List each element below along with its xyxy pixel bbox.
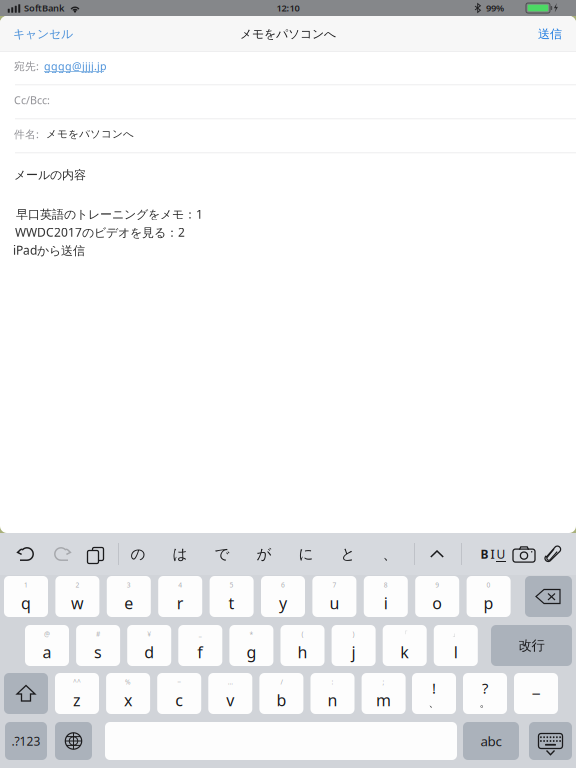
button[interactable]: Text formatting [463, 533, 507, 575]
button[interactable]: と [327, 533, 369, 575]
staticText: 、 [428, 696, 439, 709]
staticText: ( [301, 630, 303, 638]
staticText: に [298, 545, 313, 563]
button[interactable]: Switch keyboard language [55, 722, 92, 760]
staticText: 改行 [518, 637, 544, 654]
staticText: 。 [479, 696, 490, 709]
staticText: l [454, 641, 458, 663]
button[interactable]: 2 [55, 576, 99, 617]
staticText: e [124, 592, 133, 614]
button[interactable]: Paste [76, 533, 110, 575]
button[interactable]: に [285, 533, 327, 575]
button[interactable]: : [310, 673, 354, 714]
button[interactable]: 4 [158, 576, 202, 617]
staticText: ^^ [73, 678, 81, 686]
button[interactable]: 、 [369, 533, 411, 575]
staticText: .?123 [11, 733, 40, 749]
staticText: k [400, 641, 409, 663]
button[interactable]: 「 [383, 625, 427, 666]
staticText: d [144, 641, 154, 663]
staticText: 3 [127, 581, 131, 589]
button[interactable]: Insert photo [508, 533, 540, 575]
staticText: s [94, 641, 102, 663]
button[interactable]: abc [463, 722, 519, 760]
button[interactable]: 8 [364, 576, 408, 617]
button[interactable]: Delete [525, 576, 572, 617]
staticText: の [130, 545, 145, 563]
staticText: 早口英語のトレーニングをメモ：1 [16, 206, 203, 222]
staticText: i [384, 592, 388, 614]
button[interactable]: で [201, 533, 243, 575]
button[interactable]: ¥ [127, 625, 171, 666]
button[interactable]: ) [332, 625, 376, 666]
staticText: 宛先: [14, 59, 39, 73]
button[interactable]: 9 [415, 576, 459, 617]
button[interactable]: の [117, 533, 159, 575]
button[interactable]: Attach file [539, 533, 567, 575]
staticText: h [297, 641, 307, 663]
button[interactable]: 」 [434, 625, 478, 666]
button[interactable]: キャンセル [0, 16, 123, 52]
staticText: が [256, 545, 271, 563]
button[interactable]: / [259, 673, 303, 714]
staticText: 7 [332, 581, 336, 589]
button[interactable]: 5 [210, 576, 254, 617]
staticText: Cc/Bcc: [14, 93, 50, 107]
staticText: ) [353, 630, 355, 638]
staticText: ? [482, 678, 488, 698]
staticText: c [175, 689, 183, 711]
staticText: U [496, 546, 505, 562]
button[interactable]: _ [178, 625, 222, 666]
staticText: m [376, 689, 391, 711]
button[interactable]: # [76, 625, 120, 666]
button[interactable]: ( [280, 625, 324, 666]
button[interactable]: ~ [157, 673, 201, 714]
staticText: gggg@jjjj.jp [44, 59, 107, 73]
button[interactable]: @ [25, 625, 69, 666]
staticText: と [340, 545, 355, 563]
staticText: # [96, 630, 100, 638]
button[interactable]: Redo [44, 533, 78, 575]
button[interactable]: 6 [261, 576, 305, 617]
button[interactable]: 3 [107, 576, 151, 617]
staticText: y [279, 592, 287, 614]
button[interactable]: Undo [10, 533, 44, 575]
button[interactable]: ! [412, 673, 456, 714]
button[interactable]: Previous [420, 533, 454, 575]
staticText: ~ [177, 678, 181, 686]
staticText: I [490, 546, 494, 562]
button[interactable]: Shift [4, 673, 48, 714]
button[interactable]: % [106, 673, 150, 714]
staticText: r [177, 592, 184, 614]
staticText: 0 [487, 581, 491, 589]
staticText: % [125, 678, 131, 686]
button[interactable]: 送信 [490, 16, 576, 52]
staticText: 、 [382, 545, 397, 563]
staticText: 5 [230, 581, 234, 589]
staticText: o [432, 592, 442, 614]
button[interactable]: ? [463, 673, 507, 714]
button[interactable]: が [243, 533, 285, 575]
staticText: t [229, 592, 235, 614]
button[interactable]: ^^ [55, 673, 99, 714]
button[interactable]: は [159, 533, 201, 575]
button[interactable]: − [514, 673, 558, 714]
button[interactable]: ; [362, 673, 406, 714]
button[interactable]: * [229, 625, 273, 666]
staticText: 送信 [538, 27, 562, 41]
staticText: ; [383, 678, 385, 686]
button[interactable]: 0 [467, 576, 511, 617]
button[interactable]: 7 [312, 576, 356, 617]
staticText: g [246, 641, 256, 663]
staticText: n [327, 689, 337, 711]
staticText: * [249, 630, 253, 638]
staticText: ! [432, 678, 436, 698]
staticText: f [197, 641, 203, 663]
button[interactable]: .?123 [5, 723, 47, 759]
button[interactable]: Hide keyboard [529, 722, 572, 760]
button[interactable]: … [208, 673, 252, 714]
button[interactable]: 改行 [491, 625, 572, 666]
staticText: / [280, 678, 282, 686]
button[interactable]: 1 [4, 576, 48, 617]
